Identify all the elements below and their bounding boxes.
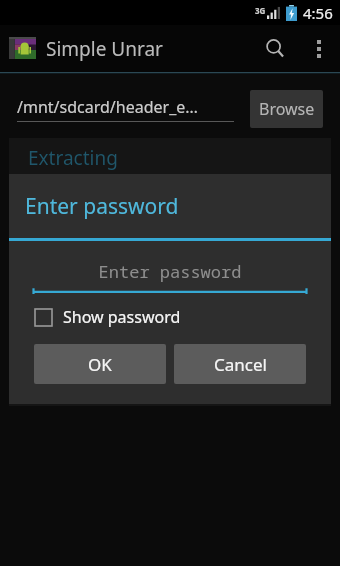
button[interactable]: Enter password <box>33 260 307 294</box>
staticText: Show password <box>63 306 181 328</box>
staticText: Extracting <box>28 145 118 171</box>
button[interactable]: OK <box>34 344 166 384</box>
button[interactable]: More options <box>298 25 340 72</box>
button[interactable]: Browse <box>250 90 323 128</box>
staticText: Enter password <box>25 192 179 221</box>
button[interactable]: /mnt/sdcard/header_e… <box>17 96 244 122</box>
button[interactable]: Cancel <box>174 344 306 384</box>
staticText: 4:56 <box>303 3 333 23</box>
staticText: Browse <box>259 98 315 120</box>
button[interactable]: Show password <box>35 306 331 328</box>
staticText: Enter password <box>33 260 307 283</box>
staticText: OK <box>88 353 112 376</box>
staticText: /mnt/sdcard/header_e… <box>17 96 198 118</box>
staticText: Simple Unrar <box>46 36 163 62</box>
staticText: 3G <box>255 5 266 16</box>
button[interactable]: Search <box>252 25 298 72</box>
staticText: Cancel <box>214 353 267 376</box>
